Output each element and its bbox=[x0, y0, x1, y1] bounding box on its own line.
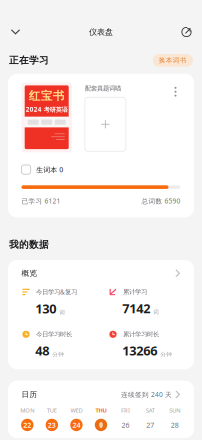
staticText: 28 bbox=[171, 420, 179, 430]
staticText: 23 bbox=[48, 420, 56, 430]
staticText: SUN bbox=[169, 406, 180, 414]
staticText: 今日学习&复习 bbox=[36, 288, 77, 296]
button[interactable]: 连续签到 240 天 bbox=[121, 390, 180, 399]
staticText: 我的数据 bbox=[9, 238, 49, 250]
button[interactable]: Share bbox=[175, 20, 198, 44]
staticText: THU bbox=[95, 406, 106, 414]
staticText: 换本词书 bbox=[159, 56, 187, 64]
staticText: 词 bbox=[153, 309, 159, 316]
staticText: 仪表盘 bbox=[89, 27, 113, 37]
staticText: 词 bbox=[59, 309, 65, 316]
staticText: MON bbox=[20, 406, 34, 414]
staticText: 配套真题词喵 bbox=[85, 84, 121, 92]
staticText: SAT bbox=[146, 406, 155, 414]
staticText: 今日学习时长 bbox=[36, 330, 72, 338]
staticText: 13266 bbox=[122, 342, 157, 359]
staticText: 总词数 6590 bbox=[141, 196, 180, 205]
button[interactable]: FRI bbox=[113, 406, 138, 431]
button[interactable]: WED bbox=[64, 406, 89, 431]
staticText: 24 bbox=[72, 420, 80, 430]
staticText: 22 bbox=[23, 420, 31, 430]
staticText: 48 bbox=[35, 342, 49, 359]
button[interactable]: SAT bbox=[138, 406, 162, 431]
staticText: 概览 bbox=[21, 268, 37, 278]
button[interactable]: More options bbox=[170, 85, 180, 99]
staticText: 130 bbox=[35, 300, 56, 317]
staticText: 分钟 bbox=[160, 351, 172, 358]
button[interactable]: 概览 bbox=[8, 260, 194, 288]
staticText: 生词本 0 bbox=[36, 165, 63, 174]
staticText: 7142 bbox=[122, 299, 150, 317]
staticText: 连续签到 240 天 bbox=[121, 390, 172, 399]
button[interactable]: Collapse bbox=[4, 20, 27, 44]
staticText: 日历 bbox=[21, 390, 37, 399]
button[interactable]: THU bbox=[89, 406, 113, 431]
staticText: WED bbox=[70, 406, 82, 414]
staticText: 已学习 6121 bbox=[21, 196, 60, 205]
staticText: 26 bbox=[122, 420, 130, 430]
staticText: FRI bbox=[121, 406, 130, 414]
staticText: TUE bbox=[47, 406, 57, 414]
staticText: 累计学习时长 bbox=[123, 330, 159, 338]
staticText: 红宝书 bbox=[29, 89, 65, 103]
button[interactable]: Add wordbook bbox=[85, 97, 126, 151]
button[interactable]: 换本词书 bbox=[153, 54, 193, 67]
button[interactable]: MON bbox=[15, 406, 40, 431]
staticText: 正在学习 bbox=[9, 54, 49, 66]
button[interactable]: 生词本 0 bbox=[8, 152, 194, 174]
button[interactable]: TUE bbox=[40, 406, 64, 431]
staticText: 分钟 bbox=[52, 351, 64, 358]
staticText: 累计学习 bbox=[123, 288, 147, 296]
staticText: 2024 考研英语 bbox=[26, 105, 68, 113]
staticText: 27 bbox=[146, 420, 154, 430]
button[interactable]: SUN bbox=[162, 406, 187, 431]
